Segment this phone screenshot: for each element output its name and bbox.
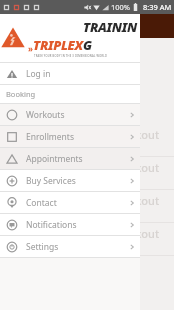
staticText: Kyle Hemig (Sub) <box>40 208 104 219</box>
staticText: 9:00 <box>8 127 30 142</box>
staticText: Triplex Group Workout <box>40 127 160 142</box>
staticText: Contact <box>26 197 129 209</box>
staticText: PM <box>13 142 26 153</box>
staticText: PM <box>13 208 26 219</box>
staticText: Appointments <box>26 153 129 165</box>
staticText: Workouts <box>26 109 129 121</box>
staticText: PM <box>13 241 26 252</box>
button[interactable]: Log in <box>0 63 140 84</box>
staticText: Buy Services <box>26 175 129 187</box>
button[interactable]: Settings <box>0 236 140 257</box>
staticText: Booking <box>6 89 36 99</box>
button[interactable]: » <box>0 14 140 62</box>
staticText: Triplex Group Workout <box>40 160 160 175</box>
staticText: Settings <box>26 241 129 253</box>
button[interactable]: Buy Services <box>0 170 140 191</box>
staticText: 10:00 <box>6 157 32 187</box>
staticText: Enrollments <box>26 131 129 143</box>
staticText: » <box>28 43 33 54</box>
button[interactable]: Enrollments <box>0 126 140 147</box>
staticText: Triplex Group Workout <box>40 193 160 208</box>
staticText: Triplex Group Workout <box>40 226 160 241</box>
staticText: Log in <box>26 68 135 80</box>
button[interactable]: Notifications <box>0 214 140 235</box>
staticText: TRAIN YOUR BODY IN THE 3 DIMENSIONAL WOR… <box>34 54 108 58</box>
staticText: 100% <box>111 2 131 12</box>
staticText: TRIPLEX <box>33 36 83 54</box>
staticText: Kyle Hemig (Sub) <box>40 175 104 186</box>
staticText: Notifications <box>26 219 129 231</box>
button[interactable]: Contact <box>0 192 140 213</box>
staticText: Kyle Hemig (Sub) <box>40 241 104 252</box>
button[interactable]: Appointments <box>0 148 140 169</box>
staticText: Kyle Hemig <box>40 142 83 153</box>
staticText: TRAINING <box>83 18 140 54</box>
staticText: 4:00 <box>8 193 30 208</box>
staticText: 5:30 <box>8 226 30 241</box>
staticText: 8:39 AM <box>143 2 172 12</box>
button[interactable]: Workouts <box>0 104 140 125</box>
